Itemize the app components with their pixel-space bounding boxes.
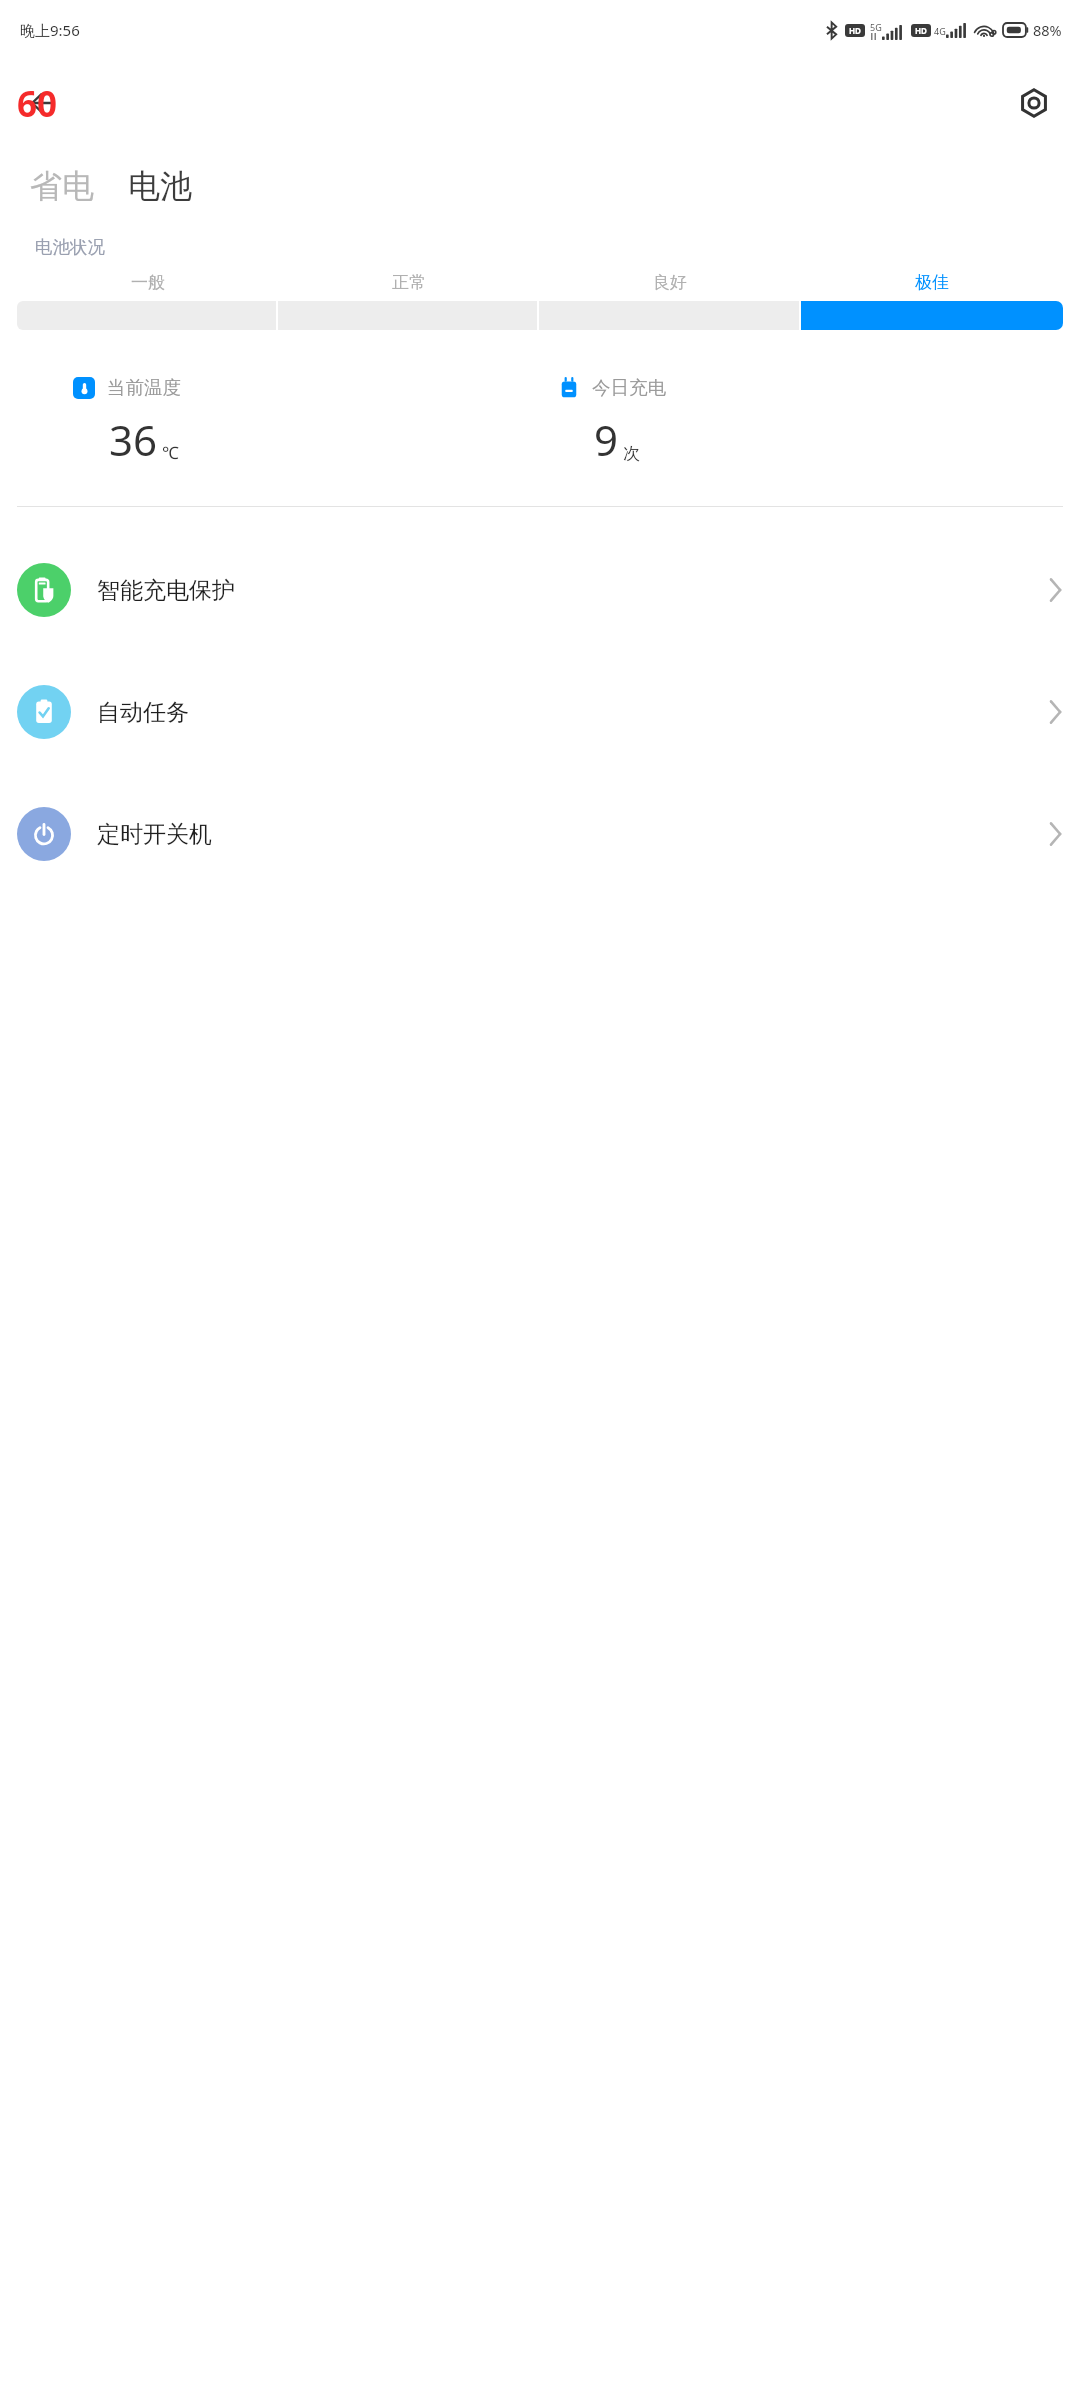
staticText: 36 bbox=[109, 411, 158, 468]
staticText: 良好 bbox=[653, 272, 687, 293]
button[interactable] bbox=[801, 301, 1063, 330]
staticText: 60 bbox=[17, 80, 58, 128]
staticText: 自动任务 bbox=[97, 698, 189, 727]
staticText: 正常 bbox=[392, 272, 426, 293]
button[interactable]: 电池 bbox=[122, 162, 198, 210]
staticText: 电池 bbox=[128, 166, 192, 206]
staticText: ℃ bbox=[162, 441, 179, 464]
button[interactable]: Settings bbox=[1002, 71, 1066, 135]
button[interactable]: 省电 bbox=[24, 162, 100, 210]
staticText: 晚上9:56 bbox=[20, 20, 80, 40]
staticText: 当前温度 bbox=[107, 376, 181, 399]
staticText: 极佳 bbox=[915, 272, 949, 293]
staticText: 省电 bbox=[30, 166, 94, 206]
staticText: 88% bbox=[1033, 20, 1062, 40]
staticText: 次 bbox=[623, 443, 640, 464]
staticText: 智能充电保护 bbox=[97, 576, 235, 605]
staticText: 电池状况 bbox=[35, 236, 105, 258]
staticText: 4G bbox=[934, 25, 946, 37]
staticText: 5G bbox=[870, 21, 882, 33]
button[interactable]: 定时开关机 bbox=[0, 773, 1080, 895]
staticText: HD bbox=[915, 25, 927, 36]
button[interactable]: Back bbox=[10, 71, 74, 135]
staticText: 今日充电 bbox=[592, 376, 666, 399]
button[interactable]: 智能充电保护 bbox=[0, 529, 1080, 651]
staticText: HD bbox=[849, 25, 861, 36]
staticText: 定时开关机 bbox=[97, 820, 212, 849]
staticText: 9 bbox=[594, 411, 619, 468]
staticText: 一般 bbox=[131, 272, 165, 293]
button[interactable]: 自动任务 bbox=[0, 651, 1080, 773]
